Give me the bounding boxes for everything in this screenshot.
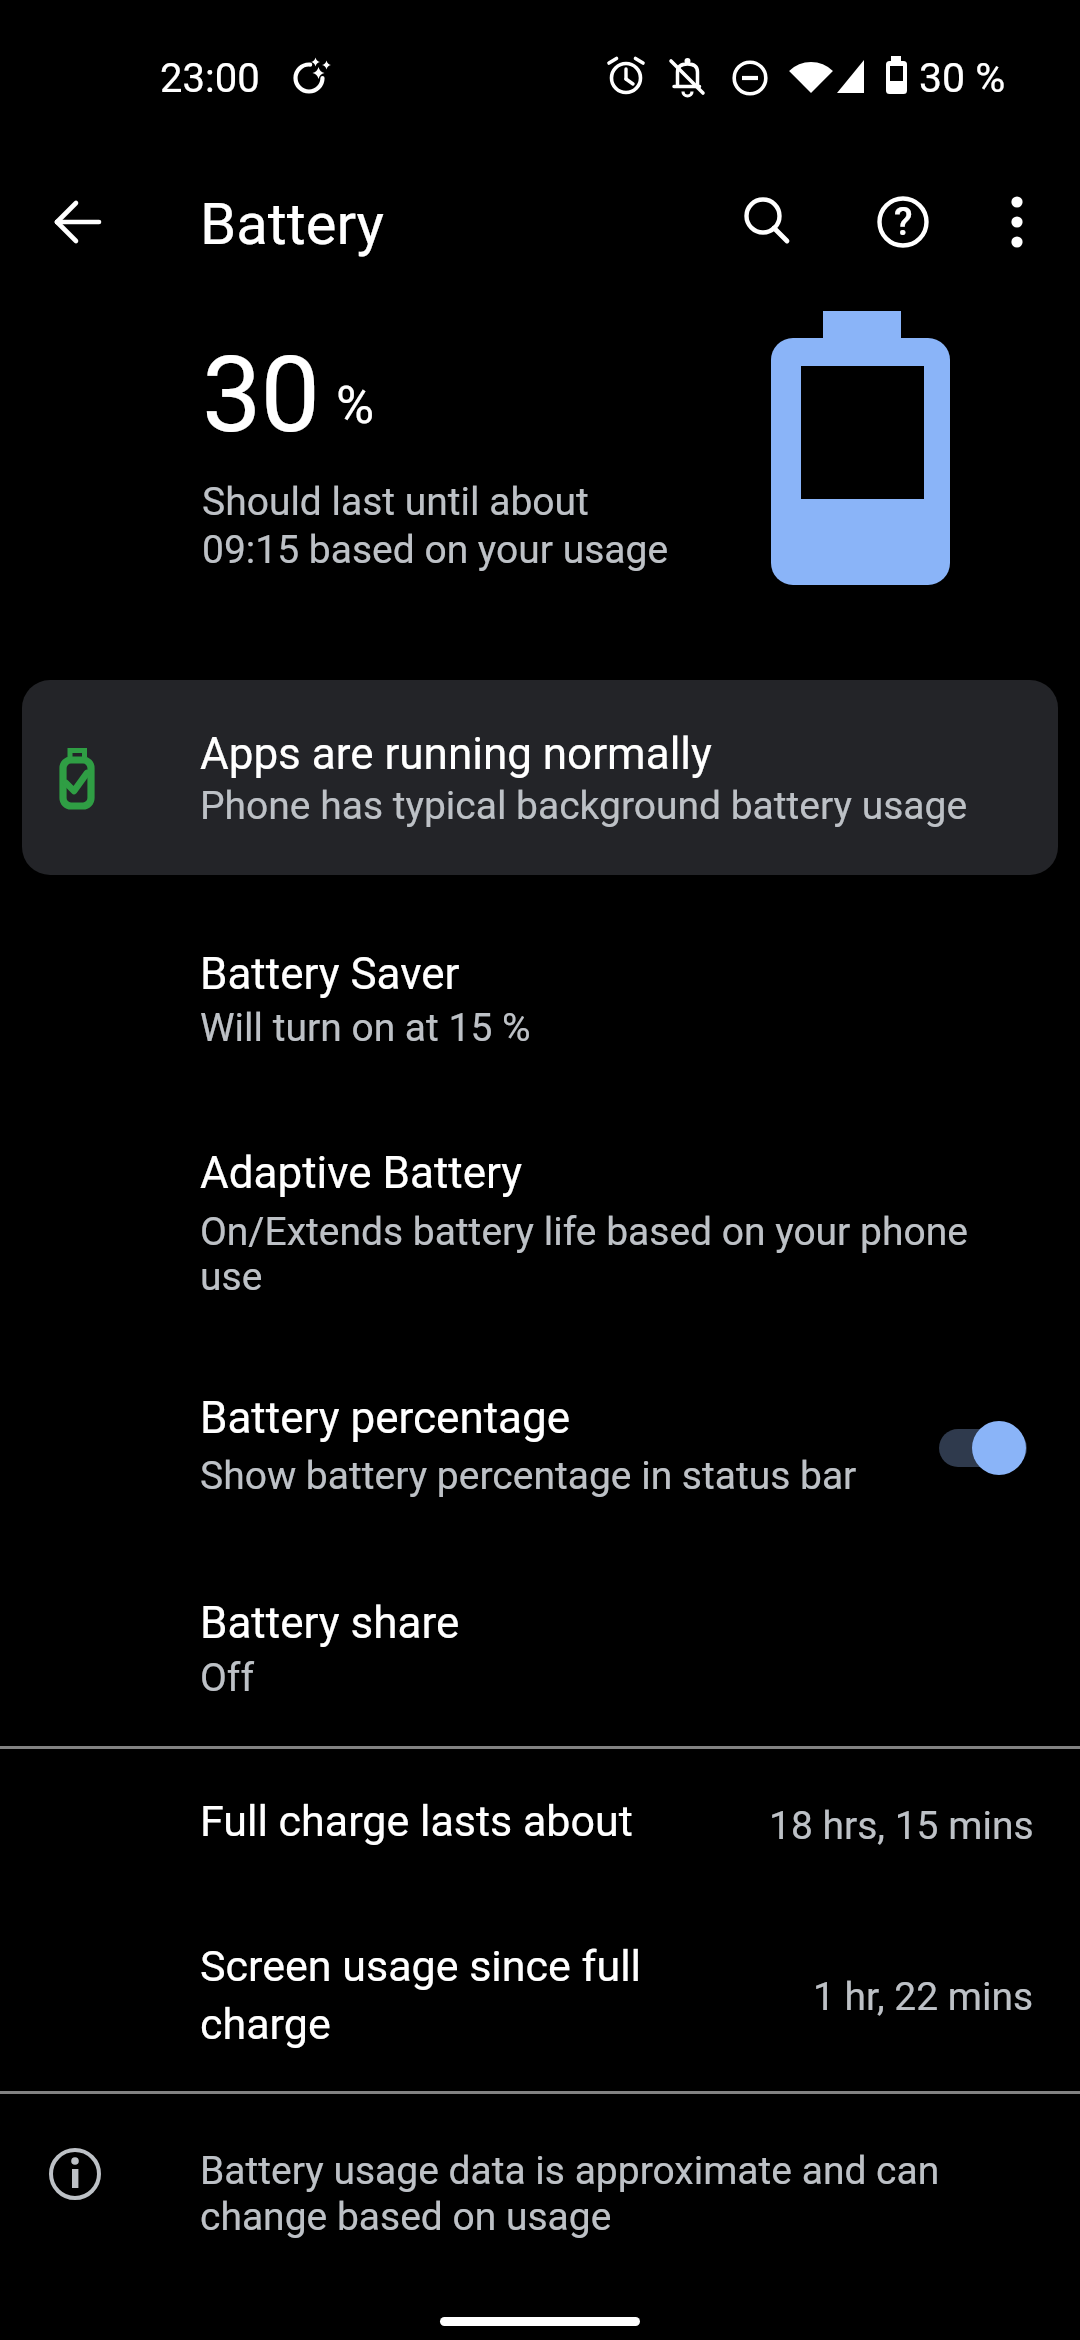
staticText: 30 % bbox=[919, 54, 1006, 102]
staticText: Adaptive Battery bbox=[200, 1147, 523, 1199]
staticText: change based on usage bbox=[200, 2194, 612, 2240]
button[interactable] bbox=[22, 680, 1058, 875]
staticText: Off bbox=[200, 1655, 254, 1701]
staticText: Full charge lasts about bbox=[200, 1796, 633, 1846]
button[interactable] bbox=[0, 1770, 1080, 1925]
staticText: % bbox=[336, 375, 375, 436]
staticText: 30 bbox=[202, 333, 320, 457]
staticText: use bbox=[200, 1254, 263, 1300]
staticText: 23:00 bbox=[160, 55, 260, 102]
button[interactable] bbox=[0, 925, 1080, 1110]
staticText: Battery Saver bbox=[200, 948, 460, 1000]
staticText: 09:15 based on your usage bbox=[202, 527, 669, 573]
staticText: Show battery percentage in status bar bbox=[200, 1453, 857, 1499]
staticText: ? bbox=[894, 200, 913, 244]
button[interactable] bbox=[0, 1575, 1080, 1740]
staticText: Should last until about bbox=[202, 479, 589, 525]
button[interactable] bbox=[0, 1125, 1080, 1355]
staticText: 18 hrs, 15 mins bbox=[769, 1803, 1034, 1849]
button[interactable] bbox=[0, 1925, 1080, 2085]
staticText: Battery share bbox=[200, 1597, 460, 1649]
button[interactable] bbox=[30, 175, 125, 270]
staticText: Screen usage since full bbox=[200, 1941, 642, 1991]
staticText: Battery usage data is approximate and ca… bbox=[200, 2148, 940, 2194]
button[interactable] bbox=[715, 175, 810, 270]
staticText: charge bbox=[200, 1999, 331, 2049]
staticText: Battery bbox=[200, 190, 384, 258]
staticText: Phone has typical background battery usa… bbox=[200, 783, 968, 829]
button[interactable] bbox=[0, 1375, 1080, 1555]
staticText: Will turn on at 15 % bbox=[200, 1005, 531, 1051]
button[interactable] bbox=[855, 175, 950, 270]
button[interactable] bbox=[975, 175, 1070, 270]
staticText: 1 hr, 22 mins bbox=[813, 1974, 1034, 2020]
staticText: On/Extends battery life based on your ph… bbox=[200, 1209, 968, 1255]
staticText: Battery percentage bbox=[200, 1392, 571, 1444]
staticText: Apps are running normally bbox=[200, 728, 712, 780]
